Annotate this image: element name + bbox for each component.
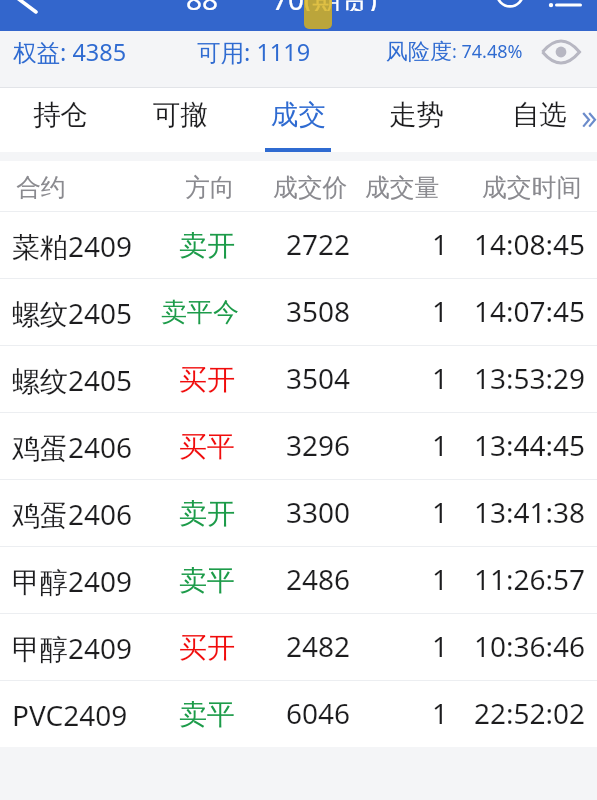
staticText: 鸡蛋2406 [12,495,133,533]
staticText: 螺纹2405 [12,361,133,399]
staticText: 14:08:45 [474,225,586,263]
staticText: 持仓 [33,98,88,133]
staticText: 13:53:29 [474,359,586,397]
button[interactable]: Back [2,0,54,1]
staticText: 1 [432,493,449,531]
button[interactable]: 持仓 [14,88,106,152]
staticText: 权益: 4385 [13,36,127,68]
button[interactable]: Account [484,0,536,1]
staticText: 13:44:45 [474,426,586,464]
button[interactable]: 自选 [493,88,585,152]
button[interactable]: 可撤 [134,88,226,152]
button[interactable]: 螺纹2405 [0,345,597,412]
staticText: 13:41:38 [474,493,586,531]
staticText: 甲醇2409 [12,562,133,600]
staticText: 1 [432,292,449,330]
staticText: 14:07:45 [474,292,586,330]
staticText: 卖平今 [161,296,239,329]
staticText: 11:26:57 [474,560,586,598]
staticText: 买平 [179,429,235,464]
staticText: 3508 [286,292,351,330]
button[interactable]: PVC2409 [0,680,597,747]
button[interactable]: 鸡蛋2406 [0,479,597,546]
button[interactable]: 甲醇2409 [0,613,597,680]
staticText: 1 [432,694,449,732]
staticText: 成交时间 [482,172,582,203]
button[interactable]: 鸡蛋2406 [0,412,597,479]
staticText: 风险度 [386,38,452,66]
staticText: 6046 [286,694,351,732]
staticText: 22:52:02 [474,694,586,732]
staticText: 成交量 [365,172,440,203]
staticText: 方向 [185,172,235,203]
staticText: : 74.48% [452,39,523,64]
staticText: 买开 [179,362,235,397]
staticText: 3300 [286,493,351,531]
staticText: 2482 [286,627,351,665]
staticText: 成交 [271,98,326,133]
button[interactable]: Toggle balance visibility [537,28,585,76]
staticText: 1 [432,627,449,665]
staticText: 甲醇2409 [12,629,133,667]
staticText: 成交价 [273,172,348,203]
button[interactable]: 走势 [370,88,462,152]
button[interactable]: 成交 [252,88,344,152]
staticText: 走势 [389,98,444,133]
staticText: 10:36:46 [474,627,586,665]
staticText: 70(期货) [272,0,377,11]
staticText: 2486 [286,560,351,598]
button[interactable]: 螺纹2405 [0,278,597,345]
staticText: 1 [432,426,449,464]
staticText: 自选 [512,98,567,133]
staticText: 可用: 1119 [197,36,311,68]
staticText: 螺纹2405 [12,294,133,332]
staticText: 卖开 [179,228,235,263]
staticText: 1 [432,225,449,263]
staticText: 1 [432,359,449,397]
button[interactable]: More tabs [582,113,597,135]
staticText: 卖平 [179,697,235,732]
staticText: 1 [432,560,449,598]
staticText: 卖平 [179,563,235,598]
staticText: 3504 [286,359,351,397]
staticText: 合约 [16,172,66,203]
button[interactable]: 菜粕2409 [0,211,597,278]
staticText: PVC2409 [12,696,128,734]
staticText: 菜粕2409 [12,227,133,265]
staticText: 2722 [286,225,351,263]
staticText: 可撤 [153,98,208,133]
staticText: 88 [186,0,219,11]
staticText: 买开 [179,630,235,665]
button[interactable]: 甲醇2409 [0,546,597,613]
staticText: 鸡蛋2406 [12,428,133,466]
staticText: 3296 [286,426,351,464]
staticText: 卖开 [179,496,235,531]
